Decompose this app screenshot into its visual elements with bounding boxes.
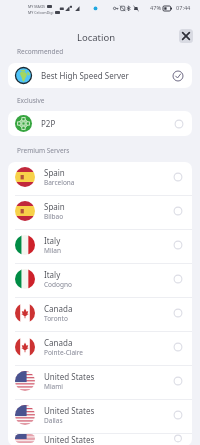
staticText: Location [77,31,116,44]
staticText: United States [44,434,95,443]
button[interactable]: United States [8,400,192,433]
staticText: Toronto [44,314,68,323]
staticText: 47% [150,4,162,12]
staticText: Canada [44,337,73,348]
button[interactable]: Canada [8,298,192,331]
staticText: Exclusive [17,96,45,105]
staticText: Milan [44,246,61,255]
staticText: Italy [44,269,61,280]
staticText: Dallas [44,416,63,425]
staticText: Recommended [17,47,64,56]
staticText: Premium Servers [17,146,70,155]
staticText: MY CelcomDigi [28,10,54,15]
staticText: Bilbao [44,212,64,221]
staticText: Best High Speed Server [41,70,172,81]
staticText: Barcelona [44,178,75,187]
staticText: 07:44 [176,4,191,12]
button[interactable]: Best High Speed Server [8,63,192,88]
staticText: Spain [44,201,65,212]
button[interactable]: Italy [8,230,192,263]
staticText: United States [44,405,95,416]
staticText: MY MAXIS [28,4,46,9]
staticText: Canada [44,303,73,314]
staticText: Miami [44,382,63,391]
button[interactable]: Spain [8,196,192,229]
button[interactable]: Close [179,29,193,43]
button[interactable]: P2P [8,111,192,136]
staticText: P2P [41,118,174,129]
staticText: Spain [44,167,65,178]
button[interactable]: Italy [8,264,192,297]
staticText: Pointe-Claire [44,348,83,357]
button[interactable]: Spain [8,162,192,195]
button[interactable]: Canada [8,332,192,365]
staticText: United States [44,371,95,382]
staticText: Italy [44,235,61,246]
button[interactable]: United States [8,434,192,445]
button[interactable]: United States [8,366,192,399]
staticText: Codogno [44,280,72,289]
